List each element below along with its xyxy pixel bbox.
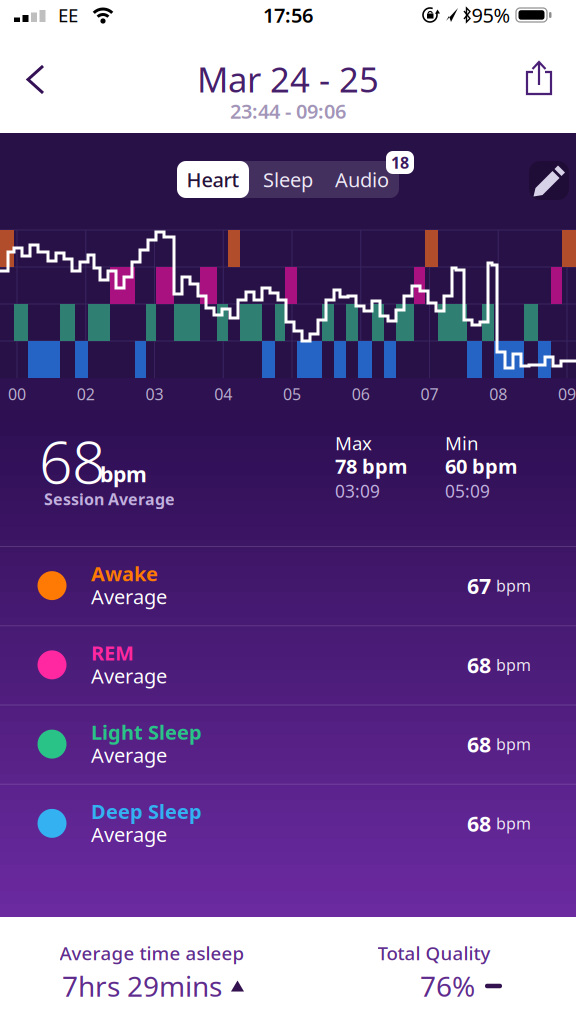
staticText: Average time asleep (59, 941, 244, 965)
staticText: 05:09 (445, 479, 490, 502)
staticText: REM (91, 640, 134, 666)
staticText: 18 (391, 152, 409, 173)
staticText: Session Average (44, 488, 175, 510)
staticText: bpm (496, 654, 531, 675)
staticText: Mar 24 - 25 (197, 56, 379, 102)
staticText: bpm (496, 813, 531, 834)
staticText: 67 (467, 571, 491, 600)
staticText: 07 (420, 383, 438, 405)
button[interactable] (0, 0, 60, 91)
staticText: Total Quality (377, 941, 490, 965)
staticText: Average (91, 663, 167, 689)
staticText: 68 (39, 422, 105, 500)
staticText: 06 (352, 383, 370, 405)
staticText: 23:44 - 09:06 (230, 98, 346, 124)
staticText: 03:09 (335, 479, 380, 502)
staticText: Audio (335, 166, 389, 193)
staticText: 03 (145, 383, 163, 405)
staticText: 02 (77, 383, 95, 405)
staticText: Min (445, 431, 479, 455)
staticText: 78 bpm (335, 453, 408, 479)
button[interactable] (514, 54, 564, 108)
staticText: Sleep (263, 166, 313, 193)
staticText: bpm (100, 460, 147, 488)
staticText: 08 (489, 383, 507, 405)
staticText: EE (58, 3, 78, 27)
staticText: Heart (186, 166, 239, 193)
staticText: 7hrs 29mins (62, 967, 222, 1005)
staticText: Average (91, 742, 167, 768)
staticText: 60 bpm (445, 453, 518, 479)
staticText: 00 (8, 383, 26, 405)
staticText: Light Sleep (91, 719, 202, 745)
button[interactable] (529, 161, 569, 200)
staticText: 68 (467, 809, 491, 837)
staticText: 68 (467, 651, 491, 679)
button[interactable]: Sleep (251, 161, 325, 198)
staticText: Max (335, 431, 372, 455)
staticText: Deep Sleep (91, 798, 202, 825)
staticText: Average (91, 821, 167, 848)
staticText: 76% (420, 967, 475, 1005)
staticText: bpm (496, 733, 531, 755)
staticText: 68 (467, 730, 491, 758)
staticText: 17:56 (263, 2, 313, 28)
button[interactable]: Heart (177, 161, 249, 198)
staticText: Average (91, 583, 167, 610)
staticText: 95% (471, 2, 510, 28)
staticText: 04 (214, 383, 232, 405)
staticText: Awake (91, 560, 158, 587)
staticText: 05 (283, 383, 301, 405)
staticText: bpm (496, 575, 531, 596)
staticText: 09 (558, 383, 576, 405)
button[interactable]: Audio (325, 161, 399, 198)
